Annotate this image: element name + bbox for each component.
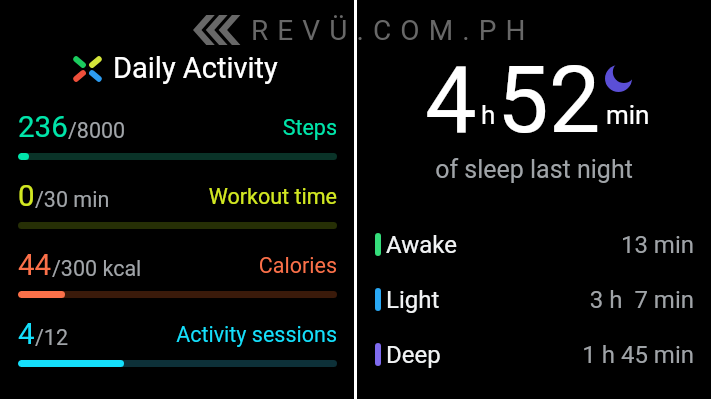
button[interactable]: Deep	[357, 338, 711, 371]
staticText: Light	[386, 286, 440, 314]
staticText: /8000	[68, 118, 126, 143]
staticText: /30 min	[35, 187, 110, 212]
button[interactable]: 236	[0, 107, 354, 155]
staticText: 4	[425, 47, 477, 155]
staticText: REVÜ.COM.PH	[251, 14, 535, 47]
button[interactable]: 44	[0, 245, 354, 293]
staticText: 1 h 45 min	[357, 341, 694, 369]
other: Sleep	[605, 65, 632, 92]
staticText: Calories	[0, 253, 337, 278]
staticText: 44	[18, 248, 52, 283]
staticText: 236	[18, 110, 68, 145]
staticText: /300 kcal	[52, 256, 142, 281]
staticText: 0	[18, 179, 35, 214]
button[interactable]: Light	[357, 283, 711, 316]
staticText: 4	[18, 317, 35, 352]
button[interactable]: 0	[0, 176, 354, 224]
staticText: Workout time	[0, 184, 337, 209]
button[interactable]: 4	[0, 314, 354, 362]
staticText: min	[606, 100, 650, 130]
staticText: 3 h 7 min	[357, 286, 694, 314]
staticText: of sleep last night	[357, 155, 711, 184]
staticText: Daily Activity	[113, 51, 278, 85]
staticText: Awake	[386, 231, 458, 259]
button[interactable]: Awake	[357, 228, 711, 261]
staticText: Deep	[386, 341, 441, 369]
staticText: 13 min	[357, 231, 694, 259]
other: Activity logo	[73, 56, 102, 82]
staticText: h	[481, 100, 496, 130]
button[interactable]: Activity logo	[66, 50, 286, 90]
staticText: Steps	[0, 115, 337, 140]
staticText: /12	[35, 325, 69, 350]
staticText: 52	[497, 47, 601, 155]
staticText: Activity sessions	[0, 322, 337, 347]
